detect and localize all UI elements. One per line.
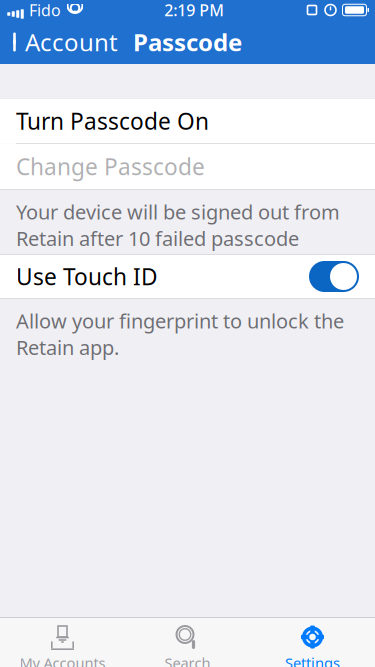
staticText: Settings — [285, 653, 340, 667]
staticText: Search — [164, 653, 210, 667]
button[interactable]: Settings — [250, 618, 375, 667]
button[interactable]: Account — [0, 20, 126, 64]
staticText: Your device will be signed out from Reta… — [16, 198, 340, 278]
staticText: Fido — [29, 0, 61, 21]
staticText: Turn Passcode On — [16, 106, 209, 136]
staticText: Allow your fingerprint to unlock the Ret… — [16, 307, 344, 361]
staticText: My Accounts — [19, 653, 105, 667]
staticText: Use Touch ID — [16, 261, 158, 291]
staticText: Change Passcode — [16, 151, 205, 181]
staticText: Account — [25, 26, 118, 58]
button[interactable]: Change Passcode — [0, 144, 375, 189]
button[interactable]: Search — [125, 618, 250, 667]
button[interactable]: Turn Passcode On — [0, 98, 375, 143]
button[interactable]: My Accounts — [0, 618, 125, 667]
staticText: Passcode — [133, 26, 242, 58]
button[interactable]: Use Touch ID — [309, 261, 359, 292]
staticText: 2:19 PM — [164, 0, 224, 21]
